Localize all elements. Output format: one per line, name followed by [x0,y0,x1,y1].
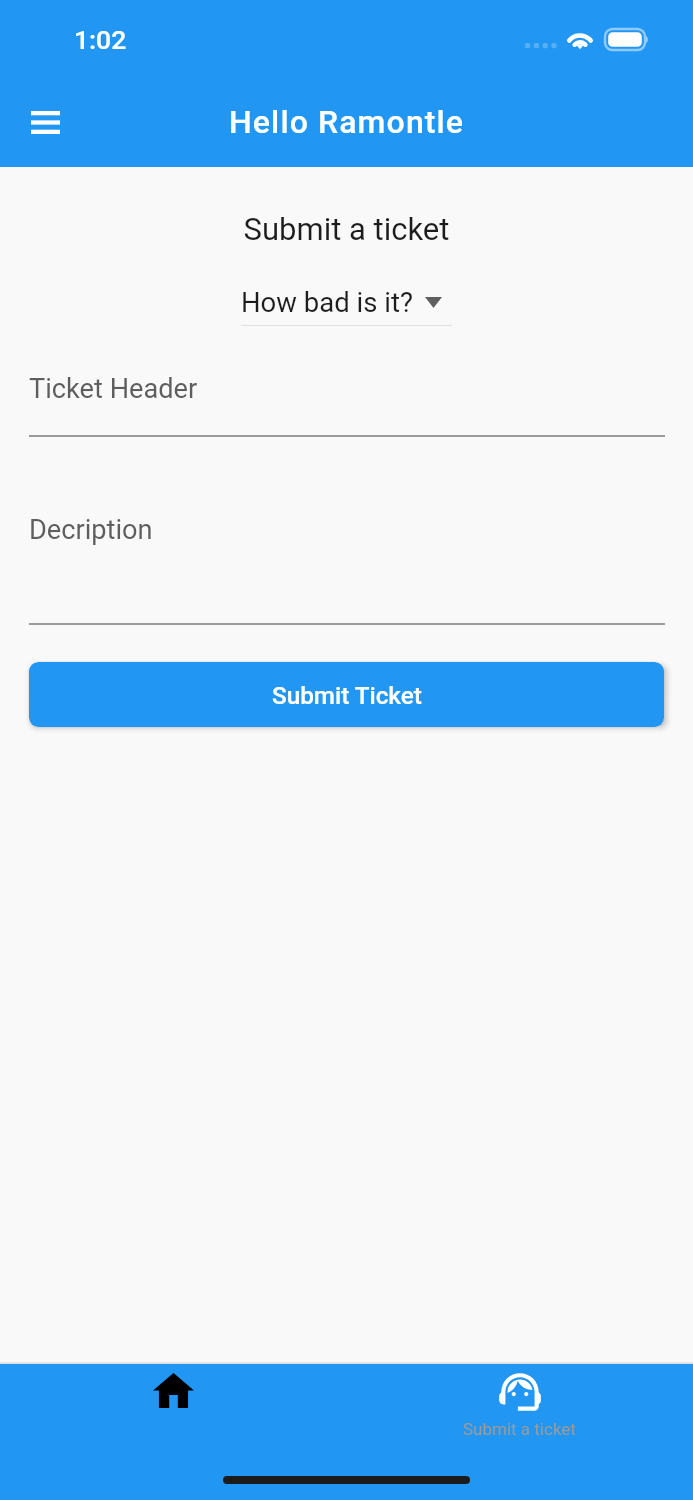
staticText: How bad is it? [241,286,413,318]
button[interactable]: Home [0,1364,346,1464]
button[interactable]: Submit a ticket [346,1364,693,1464]
staticText: Ticket Header [29,373,198,405]
button[interactable]: Open navigation menu [15,92,75,152]
staticText: Submit Ticket [272,681,422,709]
button[interactable]: How bad is it? [241,286,452,326]
staticText: Submit a ticket [0,211,693,247]
staticText: Decription [29,514,153,546]
staticText: Hello Ramontle [229,103,465,141]
button[interactable]: Submit Ticket [29,662,664,727]
staticText: Submit a ticket [463,1419,576,1439]
staticText: 1:02 [74,24,127,55]
